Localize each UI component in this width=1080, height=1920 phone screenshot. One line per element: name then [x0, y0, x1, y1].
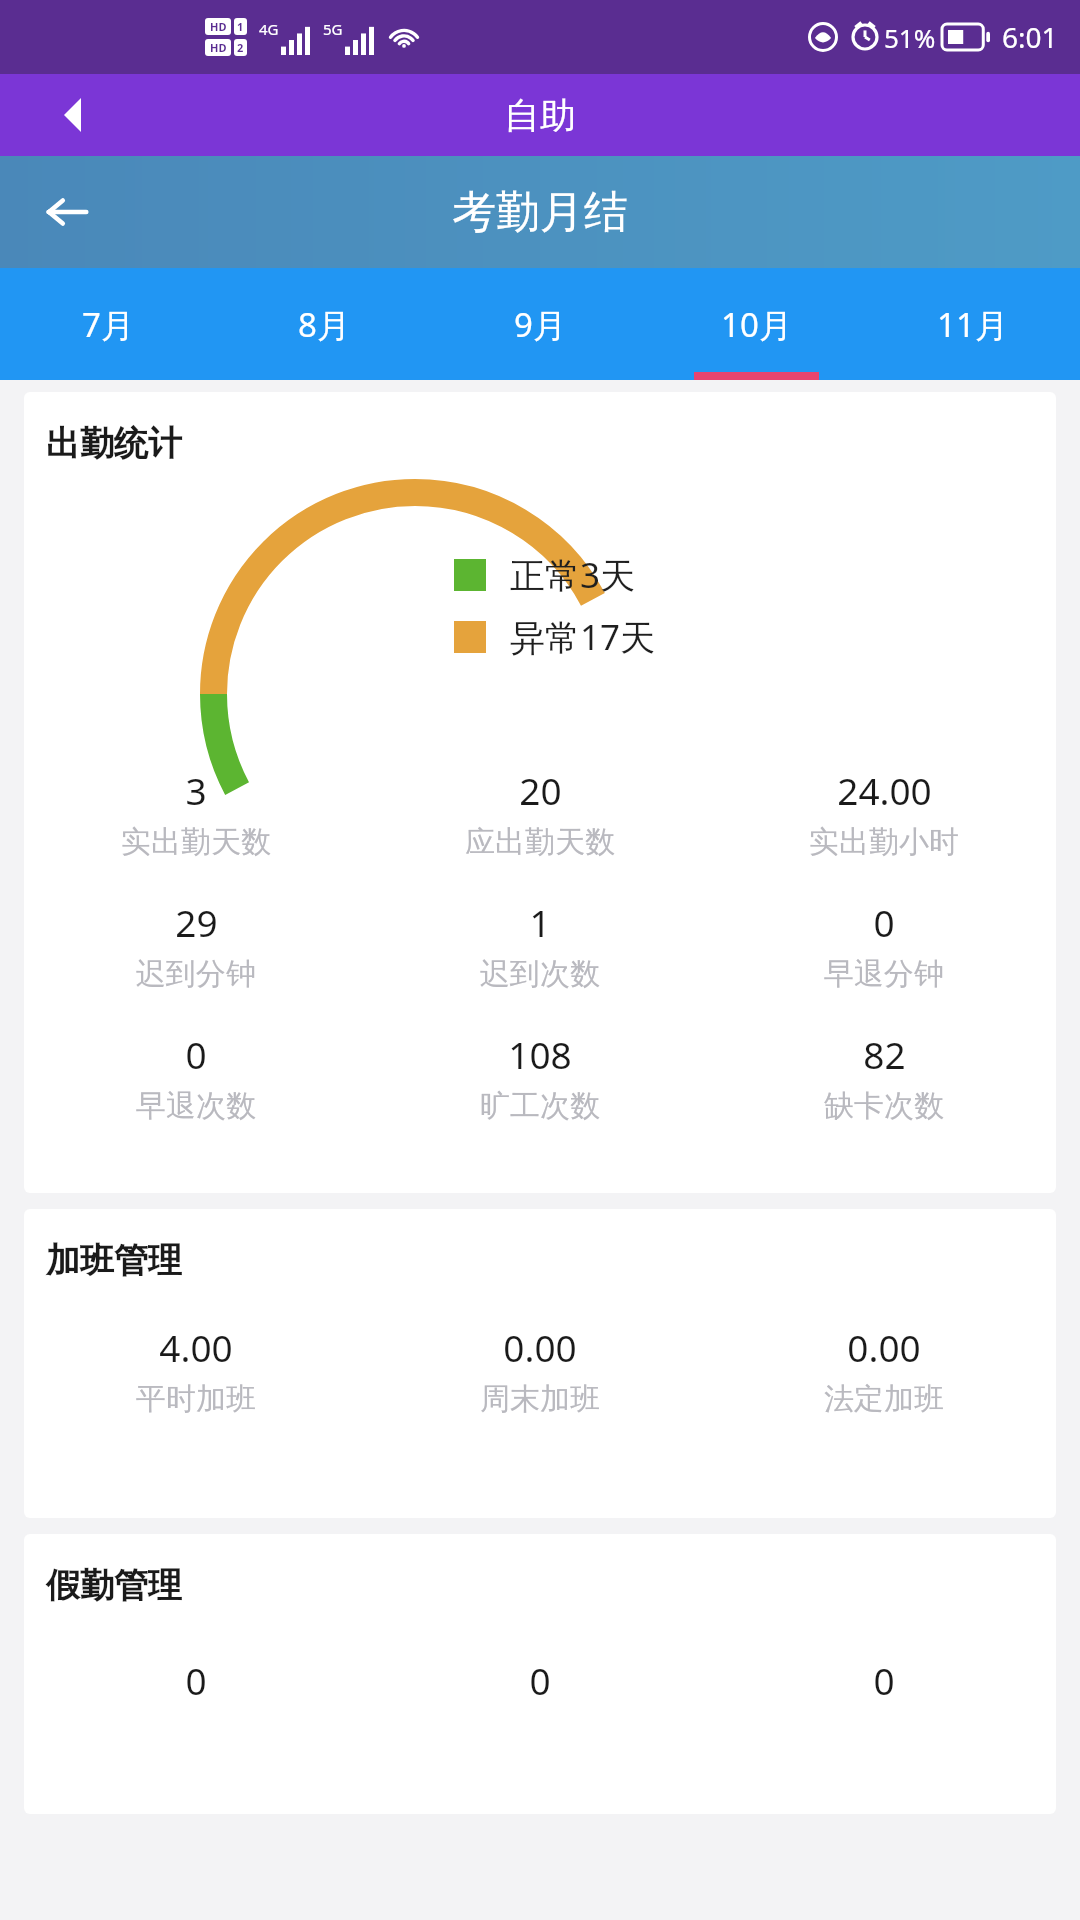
button[interactable]: 假勤管理 [24, 1534, 1056, 1814]
button[interactable]: 1 [368, 897, 712, 993]
staticText: 迟到次数 [480, 955, 600, 993]
staticText: 平时加班 [136, 1380, 256, 1418]
staticText: 108 [508, 1029, 572, 1079]
staticText: 应出勤天数 [465, 823, 615, 861]
button[interactable]: 11月 [864, 268, 1080, 380]
staticText: 5G [323, 19, 343, 39]
button[interactable]: 20 [368, 765, 712, 861]
button[interactable]: Back [36, 181, 98, 243]
staticText: 0 [185, 1029, 207, 1079]
staticText: 正常3天 [510, 551, 636, 599]
staticText: 旷工次数 [480, 1087, 600, 1125]
staticText: 20 [519, 765, 562, 815]
button[interactable]: 0.00 [368, 1322, 712, 1418]
button[interactable]: 4.00 [24, 1322, 368, 1418]
staticText: 0.00 [847, 1322, 921, 1372]
staticText: 2 [237, 40, 244, 55]
button[interactable]: 10月 [648, 268, 864, 380]
staticText: 4.00 [159, 1322, 233, 1372]
staticText: 法定加班 [824, 1380, 944, 1418]
staticText: 早退次数 [136, 1087, 256, 1125]
staticText: 24.00 [837, 765, 932, 815]
button[interactable]: 7月 [0, 268, 216, 380]
staticText: 迟到分钟 [136, 955, 256, 993]
staticText: 异常17天 [510, 613, 656, 661]
staticText: HD [210, 40, 227, 55]
button[interactable]: 82 [712, 1029, 1056, 1125]
button[interactable]: 108 [368, 1029, 712, 1125]
button[interactable]: 出勤统计 [24, 392, 1056, 1193]
staticText: 10月 [721, 302, 792, 347]
staticText: 出勤统计 [46, 422, 182, 465]
button[interactable]: 8月 [216, 268, 432, 380]
button[interactable]: 9月 [432, 268, 648, 380]
staticText: 29 [175, 897, 218, 947]
staticText: 自助 [504, 93, 576, 138]
button[interactable]: Back [46, 89, 98, 141]
staticText: 82 [863, 1029, 906, 1079]
staticText: 1 [237, 19, 244, 34]
staticText: 0 [529, 1655, 551, 1705]
button[interactable]: 加班管理 [24, 1209, 1056, 1518]
staticText: 缺卡次数 [824, 1087, 944, 1125]
staticText: 早退分钟 [824, 955, 944, 993]
staticText: 4G [259, 19, 279, 39]
staticText: 0 [873, 897, 895, 947]
staticText: 实出勤天数 [121, 823, 271, 861]
staticText: HD [210, 19, 227, 34]
button[interactable]: 3 [24, 765, 368, 861]
button[interactable]: 24.00 [712, 765, 1056, 861]
button[interactable]: 0 [24, 1655, 368, 1754]
staticText: 0 [873, 1655, 895, 1705]
staticText: 6:01 [1002, 18, 1058, 56]
staticText: 实出勤小时 [809, 823, 959, 861]
button[interactable]: 0 [712, 1655, 1056, 1754]
button[interactable]: 0 [712, 897, 1056, 993]
staticText: 周末加班 [480, 1380, 600, 1418]
button[interactable]: 29 [24, 897, 368, 993]
staticText: 51% [884, 20, 936, 55]
staticText: 11月 [937, 302, 1008, 347]
button[interactable]: 0 [24, 1029, 368, 1125]
staticText: 假勤管理 [46, 1564, 182, 1607]
staticText: 8月 [298, 302, 350, 347]
staticText: 9月 [514, 302, 566, 347]
button[interactable]: 0.00 [712, 1322, 1056, 1418]
staticText: 3 [185, 765, 207, 815]
staticText: 加班管理 [46, 1239, 182, 1282]
staticText: 0.00 [503, 1322, 577, 1372]
staticText: 0 [185, 1655, 207, 1705]
button[interactable]: 0 [368, 1655, 712, 1754]
staticText: 1 [529, 897, 551, 947]
staticText: 考勤月结 [452, 185, 628, 240]
staticText: 7月 [82, 302, 134, 347]
